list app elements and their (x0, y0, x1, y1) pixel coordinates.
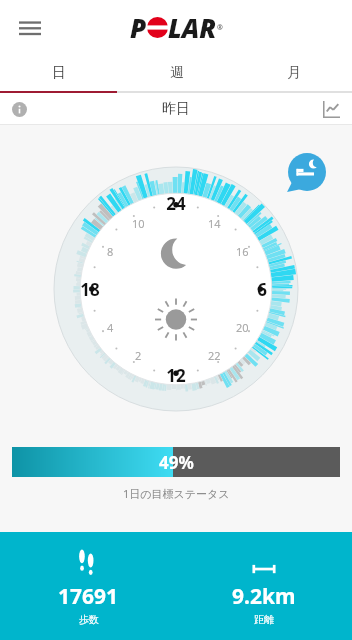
staticText: 8 (107, 244, 114, 259)
button[interactable]: 日 (0, 55, 118, 91)
staticText: 1日の目標ステータス (123, 486, 230, 501)
button[interactable]: 月 (235, 55, 352, 91)
staticText: LAR (168, 10, 217, 45)
staticText: 6 (257, 278, 267, 300)
button[interactable]: 週 (118, 55, 235, 91)
staticText: 週 (170, 64, 184, 82)
staticText: 20 (236, 320, 249, 335)
staticText: 昨日 (162, 100, 190, 118)
staticText: 18 (80, 278, 100, 300)
button[interactable]: Show trend chart (316, 94, 346, 124)
staticText: P (130, 10, 147, 45)
button[interactable]: 9.2km (176, 532, 352, 640)
staticText: 16 (236, 244, 249, 259)
staticText: 12 (166, 364, 186, 386)
staticText: ® (217, 23, 223, 33)
staticText: 日 (52, 64, 66, 82)
staticText: 17691 (58, 582, 119, 611)
staticText: 距離 (254, 613, 274, 626)
staticText: 49% (159, 451, 194, 474)
staticText: 歩数 (79, 613, 99, 626)
staticText: 22 (208, 348, 221, 363)
button[interactable]: Open navigation menu (8, 6, 52, 50)
button[interactable]: 49% (12, 447, 340, 477)
button[interactable]: Sleep details (288, 153, 326, 191)
staticText: 24 (166, 192, 186, 214)
staticText: 9.2km (232, 582, 296, 611)
staticText: 14 (208, 216, 221, 231)
staticText: 10 (132, 216, 145, 231)
button[interactable]: Information (4, 94, 34, 124)
staticText: 月 (287, 64, 301, 82)
button[interactable]: 17691 (0, 532, 176, 640)
staticText: 2 (135, 348, 142, 363)
staticText: 4 (107, 320, 114, 335)
